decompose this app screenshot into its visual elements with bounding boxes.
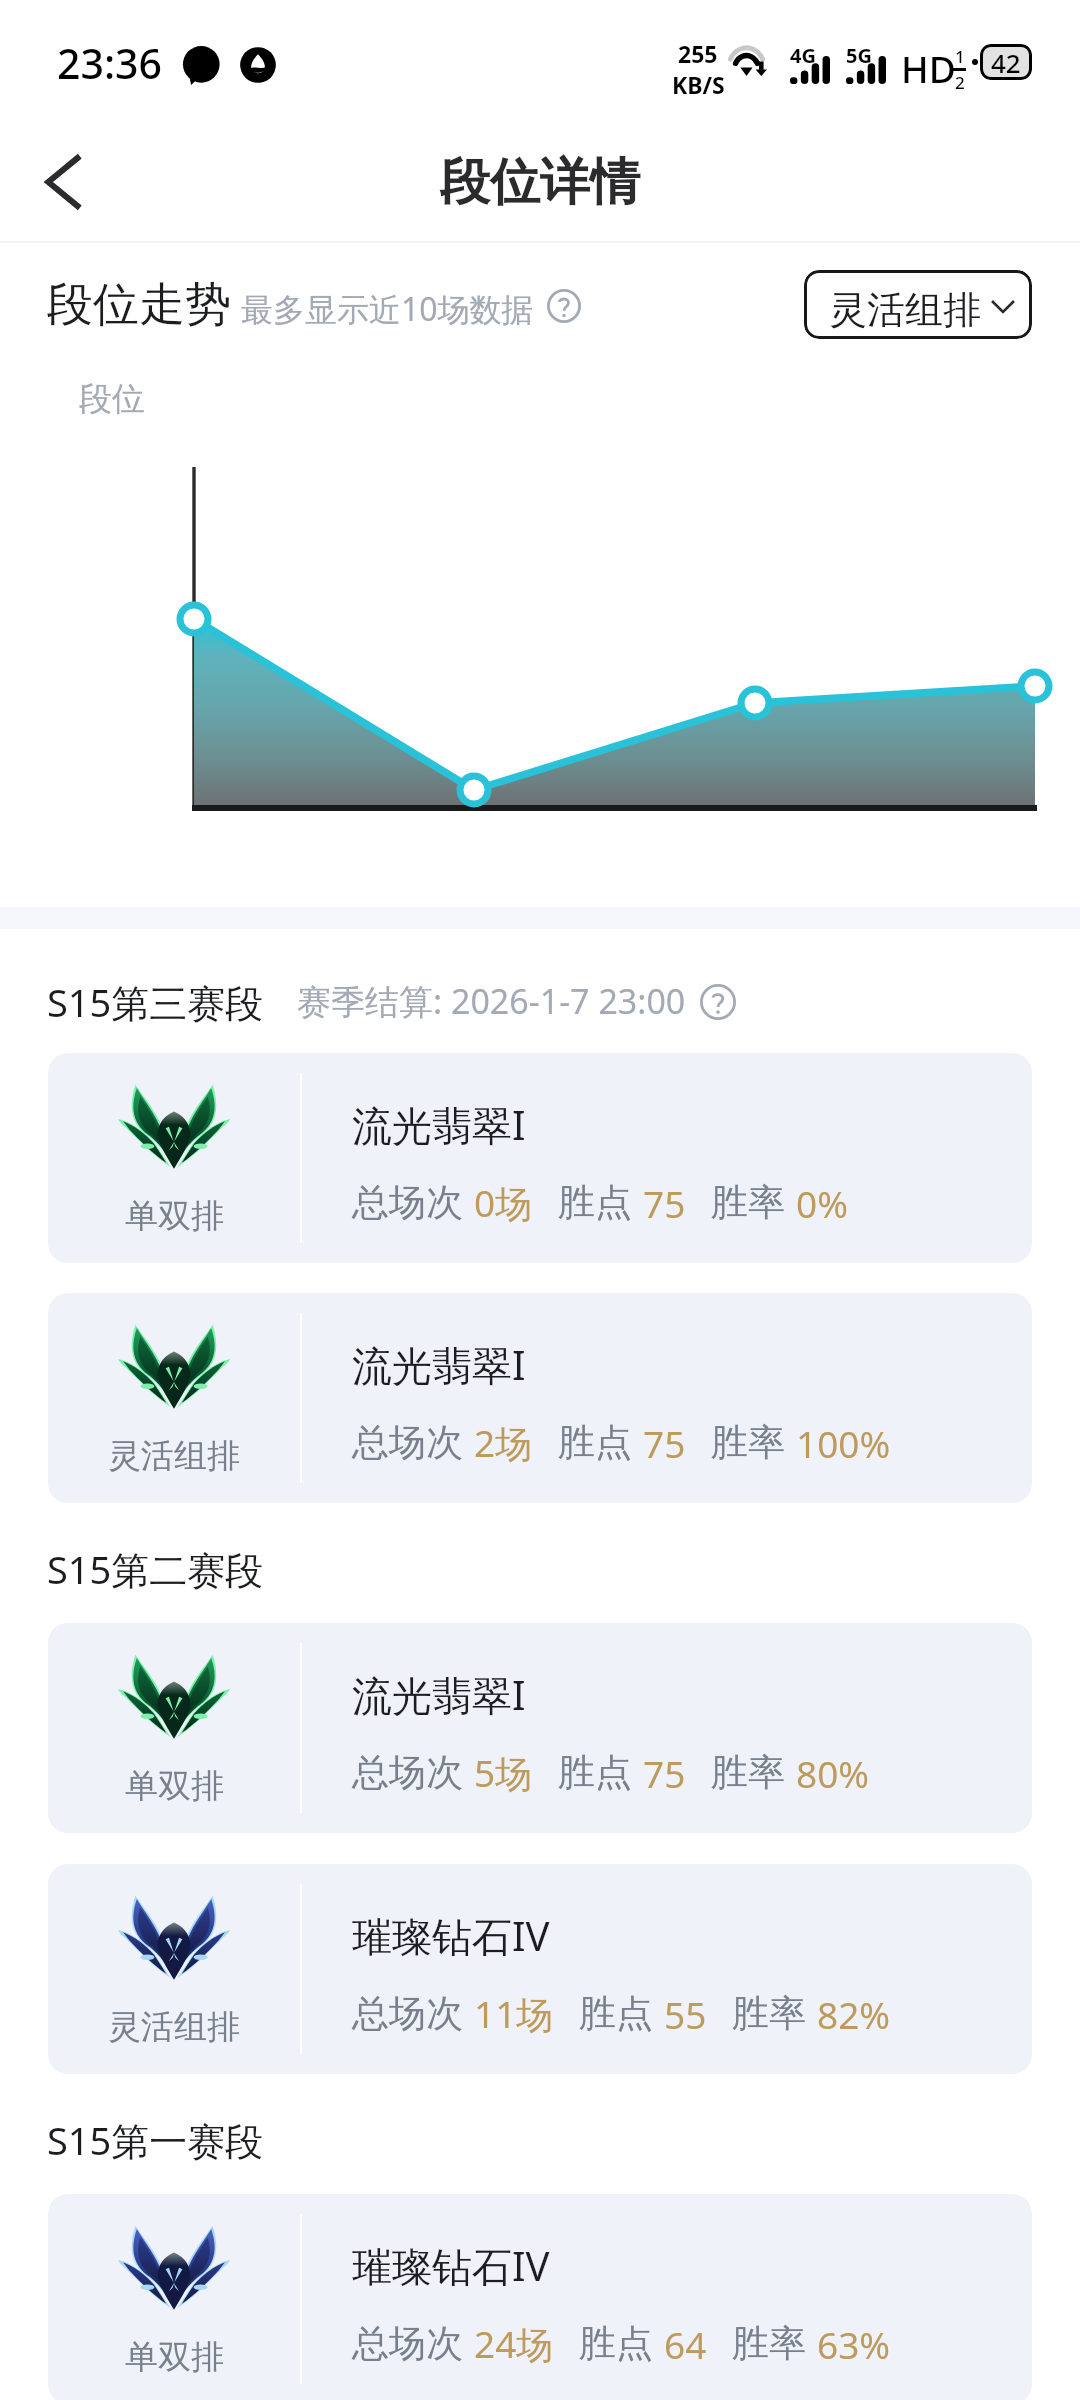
- staticText: 流光翡翠I: [352, 1097, 526, 1152]
- staticText: 最多显示近10场数据: [241, 287, 534, 331]
- staticText: 胜率: [711, 1749, 785, 1796]
- staticText: 胜点: [579, 1990, 653, 2037]
- staticText: 75: [643, 1178, 686, 1228]
- staticText: 总场次: [352, 1179, 463, 1226]
- staticText: 流光翡翠I: [352, 1337, 526, 1392]
- button[interactable]: 单双排: [48, 1053, 1032, 1263]
- staticText: 80%: [796, 1748, 870, 1798]
- staticText: S15第二赛段: [47, 1543, 264, 1595]
- staticText: 总场次: [352, 1419, 463, 1466]
- staticText: 段位详情: [440, 151, 640, 214]
- staticText: 璀璨钻石IV: [352, 2238, 550, 2293]
- staticText: 胜点: [558, 1179, 632, 1226]
- staticText: S15第三赛段: [47, 976, 264, 1028]
- staticText: 5场: [474, 1747, 533, 1798]
- staticText: 82%: [817, 1989, 891, 2039]
- staticText: 24场: [474, 2318, 554, 2369]
- staticText: 总场次: [352, 1990, 463, 2037]
- staticText: 64: [664, 2319, 707, 2369]
- staticText: 胜点: [558, 1749, 632, 1796]
- staticText: 段位走势: [47, 276, 231, 334]
- staticText: 灵活组排: [108, 1435, 240, 1477]
- staticText: 5G: [846, 42, 872, 69]
- staticText: 胜率: [732, 1990, 806, 2037]
- staticText: 胜点: [558, 1419, 632, 1466]
- button[interactable]: 灵活组排: [48, 1293, 1032, 1503]
- staticText: 胜率: [711, 1419, 785, 1466]
- staticText: 0场: [474, 1177, 533, 1228]
- staticText: 0%: [796, 1178, 848, 1228]
- button[interactable]: 灵活组排: [804, 270, 1032, 339]
- staticText: 63%: [817, 2319, 891, 2369]
- staticText: 赛季结算: 2026-1-7 23:00: [297, 978, 686, 1024]
- staticText: 75: [643, 1748, 686, 1798]
- staticText: 2场: [474, 1417, 533, 1468]
- staticText: 55: [664, 1989, 707, 2039]
- staticText: 单双排: [125, 1195, 224, 1237]
- staticText: 璀璨钻石IV: [352, 1908, 550, 1963]
- staticText: 流光翡翠I: [352, 1667, 526, 1722]
- staticText: 段位: [79, 378, 145, 420]
- button[interactable]: 单双排: [48, 2194, 1032, 2400]
- button[interactable]: 说明: [547, 289, 581, 323]
- staticText: 100%: [796, 1418, 891, 1468]
- staticText: 总场次: [352, 2320, 463, 2367]
- staticText: 灵活组排: [829, 286, 981, 334]
- staticText: 2: [955, 71, 965, 94]
- staticText: 总场次: [352, 1749, 463, 1796]
- staticText: KB/S: [672, 69, 725, 100]
- button[interactable]: 赛季结算说明: [700, 984, 736, 1020]
- staticText: S15第一赛段: [47, 2114, 264, 2166]
- staticText: HD: [901, 43, 956, 93]
- staticText: 23:36: [57, 35, 162, 91]
- staticText: 42: [991, 45, 1021, 80]
- button[interactable]: 返回: [24, 140, 108, 224]
- staticText: 胜点: [579, 2320, 653, 2367]
- staticText: 单双排: [125, 2336, 224, 2378]
- staticText: 75: [643, 1418, 686, 1468]
- button[interactable]: 单双排: [48, 1623, 1032, 1833]
- staticText: 灵活组排: [108, 2006, 240, 2048]
- button[interactable]: 灵活组排: [48, 1864, 1032, 2074]
- staticText: 11场: [474, 1988, 554, 2039]
- staticText: 255: [678, 38, 718, 69]
- staticText: 单双排: [125, 1765, 224, 1807]
- staticText: 胜率: [732, 2320, 806, 2367]
- staticText: 胜率: [711, 1179, 785, 1226]
- staticText: 1: [955, 45, 965, 68]
- staticText: 4G: [790, 42, 816, 69]
